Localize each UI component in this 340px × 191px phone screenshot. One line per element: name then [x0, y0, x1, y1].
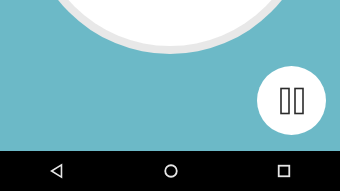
button[interactable]: Back [0, 151, 114, 191]
button[interactable]: Home [114, 151, 227, 191]
button[interactable]: Recent apps [227, 151, 340, 191]
button[interactable]: Pause [257, 66, 326, 135]
